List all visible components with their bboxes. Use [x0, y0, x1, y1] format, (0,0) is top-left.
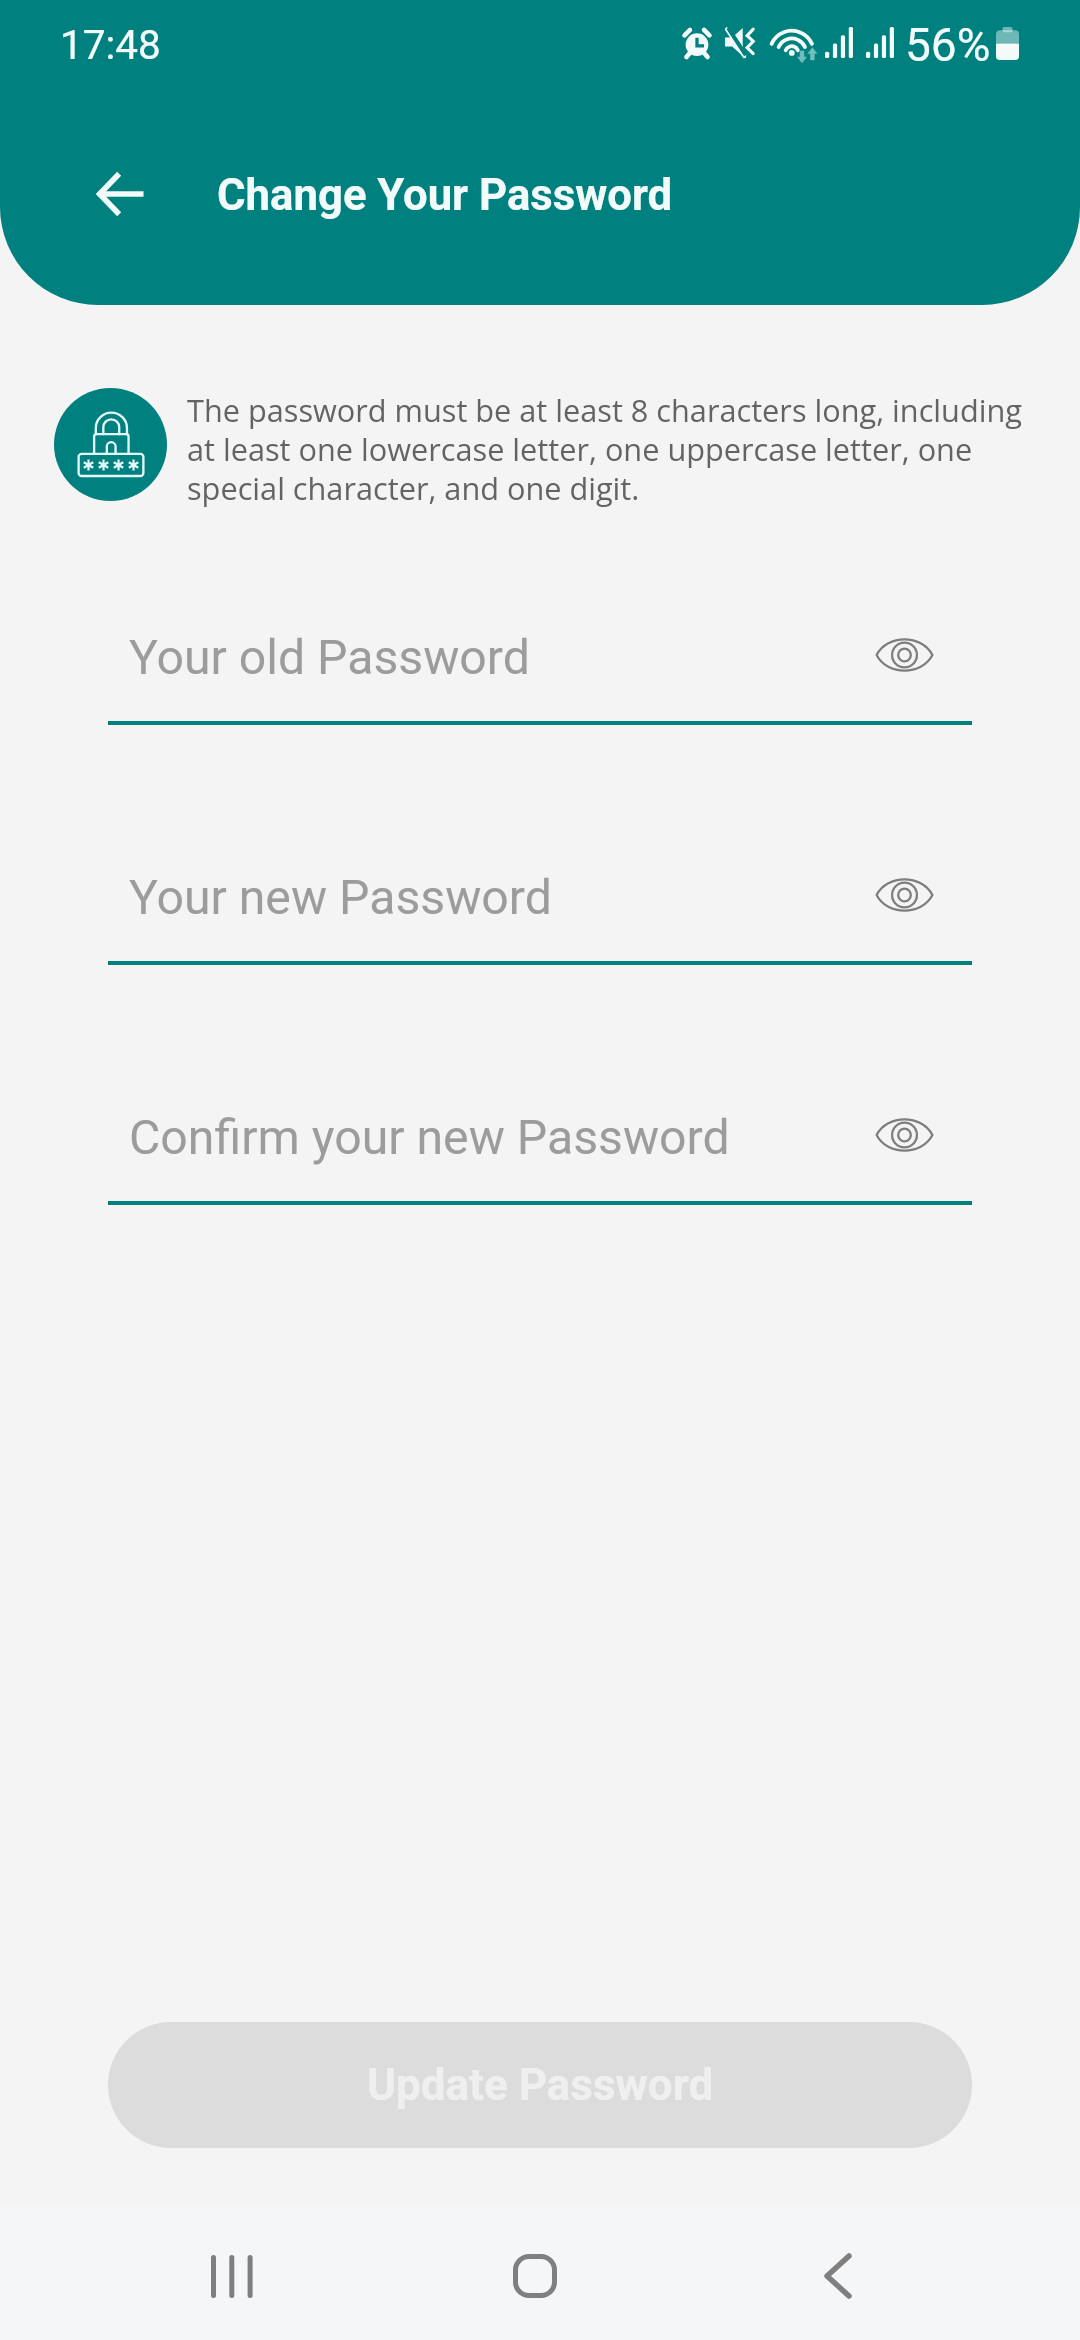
- button[interactable]: Your old Password: [108, 615, 972, 725]
- button[interactable]: Your new Password: [108, 855, 972, 965]
- staticText: 17:48: [60, 21, 161, 68]
- button[interactable]: Update Password: [108, 2022, 972, 2148]
- staticText: Confirm your new Password: [129, 1109, 730, 1165]
- staticText: The password must be at least 8 characte…: [187, 389, 1029, 509]
- button[interactable]: Show password: [862, 1092, 947, 1177]
- staticText: Update Password: [367, 2059, 714, 2111]
- button[interactable]: Home: [473, 2214, 597, 2338]
- button[interactable]: Confirm your new Password: [108, 1095, 972, 1205]
- button[interactable]: Back: [776, 2214, 900, 2338]
- staticText: 56%: [905, 18, 991, 72]
- staticText: Your old Password: [129, 629, 530, 685]
- button[interactable]: Back: [77, 150, 165, 238]
- staticText: Change Your Password: [217, 169, 673, 220]
- button[interactable]: Recent apps: [170, 2214, 294, 2338]
- button[interactable]: Show password: [862, 612, 947, 697]
- button[interactable]: Show password: [862, 852, 947, 937]
- staticText: Your new Password: [129, 869, 552, 925]
